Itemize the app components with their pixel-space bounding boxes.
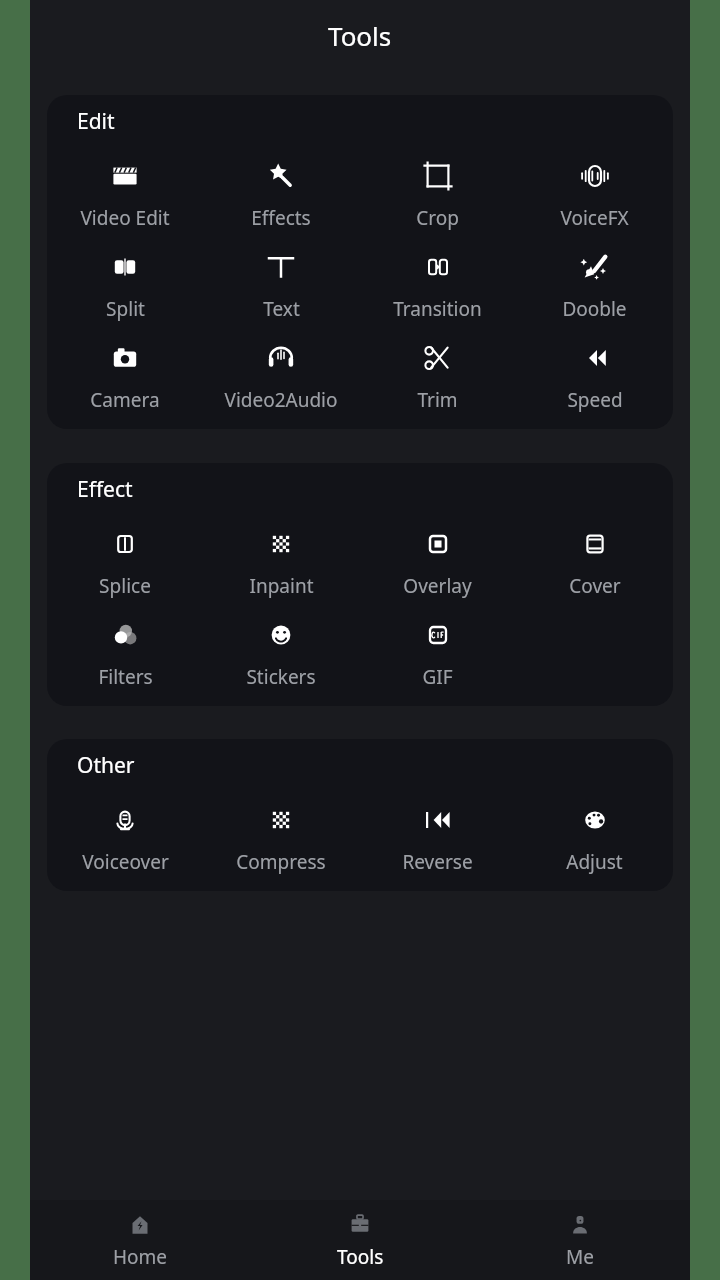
button[interactable]: Effects: [203, 148, 359, 239]
staticText: GIF: [422, 664, 453, 690]
button[interactable]: VoiceFX: [516, 148, 673, 239]
staticText: VoiceFX: [560, 205, 629, 231]
staticText: Effects: [251, 205, 311, 231]
staticText: Camera: [90, 387, 160, 413]
button[interactable]: Voiceover: [47, 792, 203, 883]
staticText: Inpaint: [249, 573, 314, 599]
button[interactable]: GIF: [359, 607, 516, 698]
staticText: Text: [263, 296, 300, 322]
button[interactable]: Video2Audio: [203, 330, 359, 421]
button[interactable]: Speed: [516, 330, 673, 421]
button[interactable]: Dooble: [516, 239, 673, 330]
staticText: Reverse: [402, 849, 473, 875]
staticText: Splice: [99, 573, 151, 599]
staticText: Filters: [98, 664, 153, 690]
staticText: Crop: [416, 205, 459, 231]
staticText: Video Edit: [80, 205, 170, 231]
staticText: Split: [106, 296, 145, 322]
button[interactable]: Video Edit: [47, 148, 203, 239]
staticText: Stickers: [246, 664, 316, 690]
staticText: Other: [77, 751, 135, 780]
button[interactable]: Transition: [359, 239, 516, 330]
staticText: Compress: [236, 849, 326, 875]
staticText: Overlay: [403, 573, 472, 599]
button[interactable]: Trim: [359, 330, 516, 421]
button[interactable]: Stickers: [203, 607, 359, 698]
button[interactable]: Camera: [47, 330, 203, 421]
staticText: Cover: [569, 573, 621, 599]
staticText: Video2Audio: [224, 387, 338, 413]
staticText: Edit: [77, 107, 115, 136]
staticText: Adjust: [566, 849, 623, 875]
button[interactable]: Reverse: [359, 792, 516, 883]
button[interactable]: Home: [30, 1200, 250, 1280]
button[interactable]: Me: [470, 1200, 690, 1280]
button[interactable]: Filters: [47, 607, 203, 698]
button[interactable]: Splice: [47, 516, 203, 607]
staticText: Transition: [393, 296, 482, 322]
button[interactable]: Cover: [516, 516, 673, 607]
button[interactable]: Compress: [203, 792, 359, 883]
button[interactable]: Adjust: [516, 792, 673, 883]
button[interactable]: Inpaint: [203, 516, 359, 607]
staticText: Trim: [417, 387, 458, 413]
button[interactable]: Tools: [250, 1200, 470, 1280]
button[interactable]: Split: [47, 239, 203, 330]
staticText: Effect: [77, 475, 133, 504]
button[interactable]: Overlay: [359, 516, 516, 607]
staticText: Tools: [337, 1244, 384, 1270]
staticText: Speed: [567, 387, 623, 413]
staticText: Me: [566, 1244, 594, 1270]
staticText: Voiceover: [82, 849, 169, 875]
button[interactable]: Crop: [359, 148, 516, 239]
staticText: Dooble: [562, 296, 627, 322]
staticText: Tools: [328, 18, 392, 53]
button[interactable]: Text: [203, 239, 359, 330]
staticText: Home: [113, 1244, 168, 1270]
